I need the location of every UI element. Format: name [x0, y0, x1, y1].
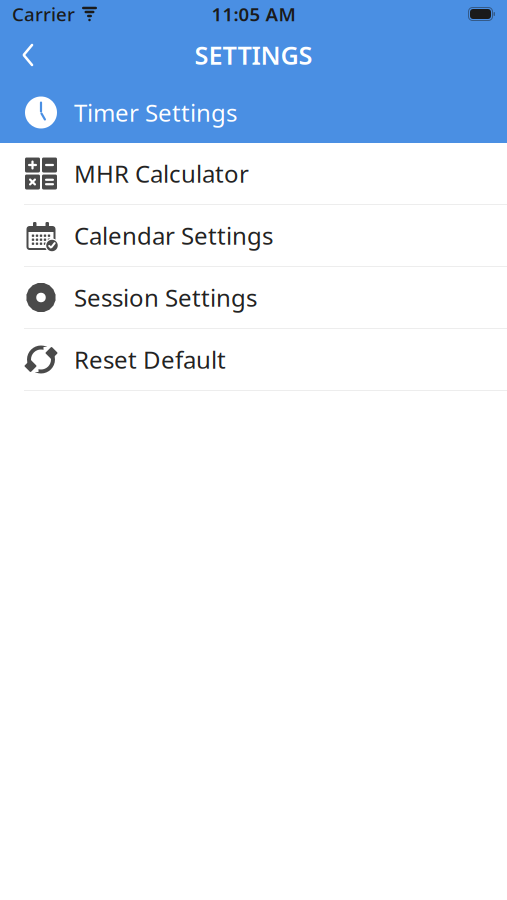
button[interactable]: Session Settings: [0, 267, 507, 329]
staticText: Carrier: [12, 2, 75, 26]
staticText: Timer Settings: [74, 97, 237, 128]
button[interactable]: Timer Settings: [0, 82, 507, 143]
staticText: SETTINGS: [194, 38, 312, 72]
staticText: Session Settings: [74, 282, 257, 313]
staticText: MHR Calculator: [74, 158, 249, 189]
staticText: Reset Default: [74, 344, 226, 375]
button[interactable]: Calendar Settings: [0, 205, 507, 267]
button[interactable]: Back: [6, 33, 50, 77]
button[interactable]: Reset Default: [0, 329, 507, 391]
staticText: 11:05 AM: [211, 2, 295, 26]
button[interactable]: MHR Calculator: [0, 143, 507, 205]
staticText: Calendar Settings: [74, 220, 273, 251]
